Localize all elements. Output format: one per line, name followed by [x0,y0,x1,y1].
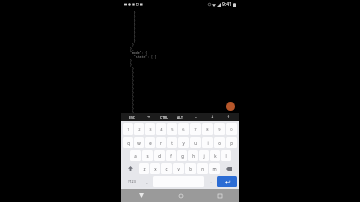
button[interactable]: q [123,137,133,148]
button[interactable]: l [221,150,231,161]
button[interactable]: CTRL [156,113,172,121]
button[interactable]: } [121,9,239,113]
staticText: "state": [ ] [130,55,157,59]
button[interactable]: s [142,150,153,161]
button[interactable]: Back [121,189,161,202]
button[interactable]: z [139,163,149,174]
staticText: ⇥ [147,115,150,119]
button[interactable]: 7 [190,123,201,135]
staticText: } [130,39,136,43]
button[interactable]: b [185,163,196,174]
button[interactable]: 1 [123,123,133,135]
button[interactable]: x [150,163,160,174]
button[interactable]: n [197,163,208,174]
staticText: − [195,115,197,120]
button[interactable]: i [202,137,213,148]
button[interactable]: Backspace [221,163,237,174]
button[interactable]: ALT [172,113,188,121]
button[interactable]: e [145,137,155,148]
staticText: } [130,79,134,83]
button[interactable]: g [177,150,187,161]
button[interactable]: ⇥ [140,113,156,121]
button[interactable]: r [156,137,166,148]
button[interactable]: 4 [156,123,166,135]
button[interactable]: 9 [214,123,225,135]
staticText: ↓ [211,115,214,119]
staticText: o [218,140,221,146]
button[interactable]: ?123 [123,176,140,187]
staticText: } [130,75,134,79]
button[interactable]: Home [161,189,200,202]
button[interactable]: Enter [217,176,237,187]
staticText: u [194,140,197,146]
staticText: ↑ [227,115,230,119]
button[interactable]: w [134,137,144,148]
button[interactable]: d [154,150,165,161]
button[interactable]: 2 [134,123,144,135]
staticText: 2 [138,127,141,132]
staticText: } [130,87,134,91]
staticText: } [130,11,136,15]
staticText: 4 [160,127,163,132]
button[interactable]: 5 [167,123,177,135]
button[interactable]: − [188,113,204,121]
staticText: 5 [171,127,174,132]
button[interactable]: o [214,137,225,148]
staticText: p [230,140,233,146]
button[interactable]: j [199,150,209,161]
button[interactable]: 3 [145,123,155,135]
button[interactable]: v [173,163,184,174]
staticText: } [130,19,136,23]
button[interactable]: f [166,150,176,161]
button[interactable]: c [161,163,172,174]
staticText: CTRL [160,115,169,120]
button[interactable]: k [210,150,220,161]
button[interactable]: t [167,137,177,148]
staticText: e [149,140,152,146]
staticText: } [130,43,134,47]
staticText: } [130,67,134,71]
staticText: d [158,153,161,159]
button[interactable]: Recent apps [200,189,239,202]
staticText: g [181,153,184,159]
staticText: . [210,179,212,184]
button[interactable]: u [190,137,201,148]
staticText: a [134,153,137,159]
button[interactable]: ESC [124,113,140,121]
staticText: l [225,153,227,159]
staticText: n [201,166,204,172]
staticText: c [165,166,168,172]
staticText: } [130,27,136,31]
staticText: 9:41 [222,1,232,8]
button[interactable]: a [130,150,141,161]
staticText: z [143,166,146,172]
button[interactable]: Shift [123,163,138,174]
button[interactable]: ↑ [220,113,236,121]
staticText: r [160,140,162,146]
staticText: } [130,83,134,87]
staticText: } [130,71,134,75]
button[interactable]: 6 [178,123,189,135]
button[interactable]: y [178,137,189,148]
staticText: 6 [182,127,185,132]
staticText: b [189,166,192,172]
staticText: v [177,166,180,172]
button[interactable]: 8 [202,123,213,135]
button[interactable]: m [209,163,220,174]
staticText: 9 [218,127,221,132]
button[interactable]: 0 [226,123,237,135]
staticText: h [192,153,195,159]
staticText: 7 [194,127,197,132]
button[interactable]: p [226,137,237,148]
staticText: }, [130,47,134,51]
staticText: , [146,179,148,184]
staticText: j [203,153,205,159]
button[interactable]: ↓ [204,113,220,121]
staticText: q [127,140,130,146]
staticText: i [207,140,209,146]
button[interactable]: h [188,150,198,161]
staticText: 8 [206,127,209,132]
